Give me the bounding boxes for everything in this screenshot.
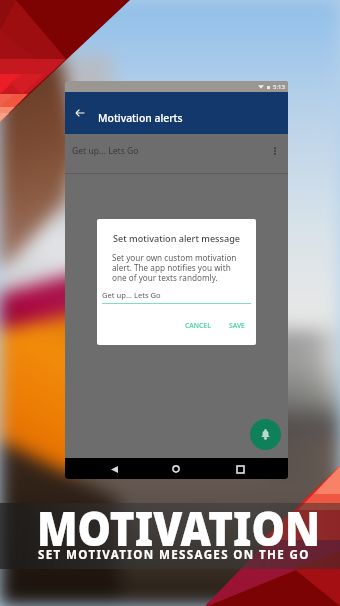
staticText: SET MOTIVATION MESSAGES ON THE GO [38, 547, 310, 563]
button[interactable]: Add alert [250, 419, 281, 450]
button[interactable]: Recents [232, 461, 248, 477]
staticText: Motivation alerts [98, 111, 183, 125]
button[interactable]: Back [71, 104, 89, 122]
staticText: MOTIVATION [37, 495, 320, 560]
staticText: Get up... Lets Go [72, 145, 267, 157]
button[interactable]: Home [168, 461, 184, 477]
button[interactable]: SAVE [225, 318, 249, 333]
button[interactable]: Back [106, 461, 122, 477]
button[interactable]: Get up... Lets Go [65, 134, 288, 173]
staticText: Get up... Lets Go [102, 290, 161, 300]
staticText: Set your own custom motivation alert. Th… [112, 252, 237, 283]
staticText: Set motivation alert message [97, 232, 256, 244]
staticText: SAVE [229, 321, 245, 330]
button[interactable]: More options [267, 143, 283, 159]
button[interactable]: CANCEL [181, 318, 215, 333]
staticText: 5:13 [273, 83, 285, 91]
staticText: CANCEL [185, 321, 211, 330]
